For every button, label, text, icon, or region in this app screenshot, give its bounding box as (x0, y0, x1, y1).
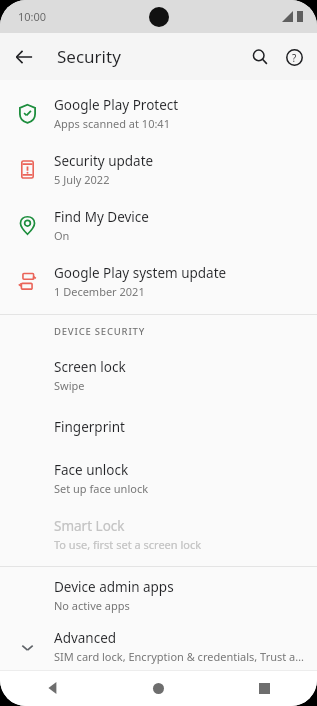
button[interactable]: Smart Lock (0, 506, 317, 562)
button[interactable]: Screen lock (0, 347, 317, 403)
staticText: 1 December 2021 (54, 284, 145, 299)
staticText: Find My Device (54, 208, 149, 226)
staticText: Security (57, 45, 121, 68)
staticText: Device admin apps (54, 578, 174, 596)
button[interactable]: Device admin apps (0, 567, 317, 623)
staticText: ? (292, 51, 297, 65)
staticText: On (54, 228, 70, 243)
staticText: 5 July 2022 (54, 172, 110, 187)
staticText: Face unlock (54, 461, 129, 479)
staticText: Google Play Protect (54, 96, 179, 114)
staticText: DEVICE SECURITY (54, 325, 146, 338)
button[interactable]: Find My Device (0, 197, 317, 253)
staticText: Google Play system update (54, 264, 227, 282)
staticText: Screen lock (54, 358, 126, 376)
button[interactable]: Fingerprint (0, 403, 317, 450)
staticText: Set up face unlock (54, 481, 149, 496)
staticText: Smart Lock (54, 517, 125, 535)
button[interactable]: Search (243, 40, 277, 74)
other: Expand advanced (12, 632, 42, 662)
button[interactable]: Recent apps (211, 670, 317, 706)
button[interactable]: Google Play Protect (0, 85, 317, 141)
staticText: Security update (54, 152, 154, 170)
button[interactable]: Back (7, 40, 41, 74)
button[interactable]: Expand advanced (0, 623, 317, 670)
button[interactable]: Face unlock (0, 450, 317, 506)
staticText: Fingerprint (54, 418, 125, 436)
staticText: To use, first set a screen lock (54, 537, 202, 552)
staticText: Swipe (54, 378, 85, 393)
staticText: SIM card lock, Encryption & credentials,… (54, 649, 305, 664)
button[interactable]: Home (105, 670, 211, 706)
staticText: Apps scanned at 10:41 (54, 116, 170, 131)
staticText: No active apps (54, 598, 130, 613)
button[interactable]: Help (277, 40, 311, 74)
staticText: Advanced (54, 629, 117, 647)
button[interactable]: Back (0, 670, 105, 706)
button[interactable]: Google Play system update (0, 253, 317, 309)
button[interactable]: Security update (0, 141, 317, 197)
staticText: 10:00 (18, 9, 47, 24)
